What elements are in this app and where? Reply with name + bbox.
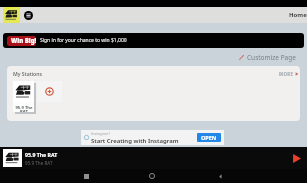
button[interactable]: 95.9 The RAT <box>13 81 34 112</box>
staticText: Win Big! <box>11 37 36 45</box>
staticText: My Stations <box>13 70 42 77</box>
staticText: Sign in for your chance to win $1,000 <box>40 37 127 44</box>
button[interactable]: Menu <box>24 11 33 20</box>
staticText: Start Creating with Instagram <box>91 137 179 145</box>
button[interactable]: Win Big! <box>3 33 304 48</box>
button[interactable]: Play <box>289 151 303 165</box>
button[interactable]: Recents <box>81 171 91 181</box>
button[interactable]: Station logo <box>3 7 20 23</box>
button[interactable]: OPEN <box>197 133 221 142</box>
staticText: 95.9 The RAT <box>15 105 33 112</box>
staticText: 95.9 The RAT <box>25 151 58 158</box>
button[interactable]: MORE <box>279 71 299 77</box>
staticText: OPEN <box>201 134 217 141</box>
button[interactable]: Add station <box>37 81 62 102</box>
button[interactable]: Back <box>215 171 225 181</box>
button[interactable]: Home <box>147 171 157 181</box>
staticText: Instagram? <box>91 131 111 136</box>
button[interactable]: Customize Page <box>238 53 296 62</box>
staticText: Customize Page <box>247 53 296 62</box>
button[interactable]: 95.9 The RAT <box>0 147 307 169</box>
staticText: Home <box>289 11 307 19</box>
staticText: MORE <box>279 71 294 77</box>
staticText: 95.9 The RAT <box>25 160 53 166</box>
